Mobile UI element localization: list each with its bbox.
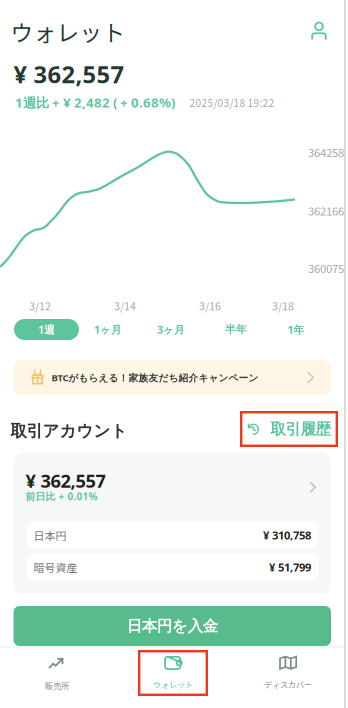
staticText: 1週 bbox=[38, 322, 55, 337]
button[interactable]: 取引履歴 bbox=[240, 411, 338, 447]
button[interactable]: 1ヶ月 bbox=[80, 316, 135, 342]
button[interactable]: 販売所 bbox=[0, 650, 114, 698]
staticText: ¥ 310,758 bbox=[263, 528, 311, 543]
staticText: 1ヶ月 bbox=[94, 322, 122, 337]
staticText: ¥ 51,799 bbox=[269, 560, 311, 575]
button[interactable]: 1週 bbox=[14, 316, 79, 342]
staticText: ¥ 362,557 bbox=[13, 58, 124, 90]
staticText: BTCがもらえる！家族友だち紹介キャンペーン bbox=[51, 371, 258, 384]
staticText: 販売所 bbox=[45, 680, 69, 692]
button[interactable]: 日本円を入金 bbox=[13, 606, 331, 646]
button[interactable]: 1年 bbox=[268, 316, 323, 342]
staticText: 1週比 + ¥ 2,482 ( + 0.68%) bbox=[15, 93, 175, 111]
button[interactable]: 半年 bbox=[208, 316, 263, 342]
staticText: 3ヶ月 bbox=[157, 322, 185, 337]
button[interactable]: BTCがもらえる！家族友だち紹介キャンペーン bbox=[13, 360, 331, 395]
staticText: 3/12 bbox=[29, 298, 51, 313]
button[interactable]: アカウント bbox=[301, 13, 337, 49]
staticText: 2025/03/18 19:22 bbox=[189, 95, 274, 110]
staticText: 3/18 bbox=[272, 298, 294, 313]
staticText: 半年 bbox=[225, 323, 247, 336]
staticText: 3/16 bbox=[199, 298, 221, 313]
button[interactable]: ディスカバー bbox=[230, 649, 345, 697]
staticText: 日本円を入金 bbox=[127, 616, 218, 636]
staticText: ¥ 362,557 bbox=[25, 468, 105, 493]
staticText: 360075 bbox=[308, 260, 344, 276]
staticText: ディスカバー bbox=[264, 679, 312, 690]
button[interactable]: 3ヶ月 bbox=[143, 316, 198, 342]
staticText: ウォレット bbox=[10, 15, 125, 48]
staticText: 取引アカウント bbox=[10, 421, 127, 441]
staticText: 1年 bbox=[287, 322, 304, 337]
staticText: 362166 bbox=[308, 202, 344, 219]
staticText: ウォレット bbox=[153, 679, 193, 690]
staticText: 取引履歴 bbox=[270, 419, 330, 439]
staticText: 暗号資産 bbox=[33, 559, 77, 575]
staticText: 前日比 + 0.01% bbox=[25, 489, 97, 503]
staticText: 日本円 bbox=[33, 527, 66, 543]
button[interactable]: ¥ 362,557 bbox=[13, 452, 331, 594]
button[interactable]: ウォレット bbox=[115, 649, 230, 697]
staticText: 3/14 bbox=[114, 298, 136, 313]
staticText: 364258 bbox=[308, 144, 344, 160]
